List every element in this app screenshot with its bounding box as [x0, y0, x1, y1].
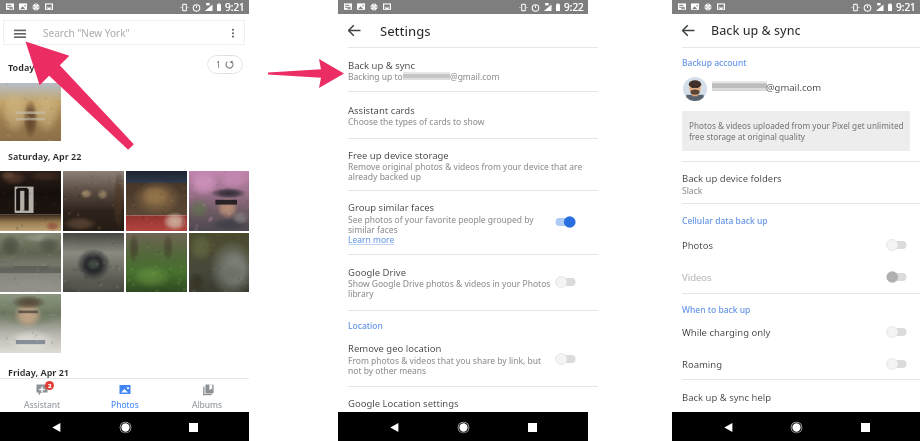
- button[interactable]: Roaming: [682, 358, 723, 371]
- button[interactable]: Free up device storage: [348, 149, 449, 162]
- staticText: Back up & sync: [348, 59, 416, 72]
- button[interactable]: Back: [381, 414, 407, 440]
- staticText: Remove original photos & videos from you…: [348, 161, 583, 183]
- button[interactable]: Photo: [0, 83, 61, 141]
- staticText: 2: [48, 382, 52, 390]
- staticText: Today: [8, 61, 35, 73]
- staticText: 9:22: [564, 0, 584, 14]
- button[interactable]: Photo: [0, 171, 61, 231]
- button[interactable]: Photos: [83, 379, 166, 413]
- staticText: @gmail.com: [766, 81, 822, 94]
- button[interactable]: Menu: [3, 20, 245, 45]
- button[interactable]: Recents: [852, 414, 878, 440]
- button[interactable]: Toggle: [885, 325, 908, 339]
- button[interactable]: Back up & sync help: [682, 391, 772, 404]
- staticText: Remove geo location: [348, 342, 442, 355]
- button[interactable]: Toggle: [554, 352, 577, 366]
- staticText: Friday, Apr 21: [8, 366, 69, 378]
- staticText: Saturday, Apr 22: [8, 150, 82, 162]
- staticText: Roaming: [682, 358, 723, 371]
- staticText: 9:21: [896, 0, 916, 14]
- button[interactable]: Back: [715, 414, 741, 440]
- button[interactable]: Google Location settings: [348, 397, 459, 410]
- button[interactable]: Albums: [166, 379, 249, 413]
- staticText: Albums: [192, 399, 223, 411]
- staticText: Backup account: [682, 57, 747, 69]
- button[interactable]: Videos: [682, 271, 712, 284]
- button[interactable]: Account avatar: [683, 77, 707, 101]
- button[interactable]: Assistant cards: [348, 104, 415, 117]
- staticText: Show Google Drive photos & videos in you…: [348, 278, 551, 300]
- staticText: 9:21: [225, 0, 245, 14]
- staticText: When to back up: [682, 304, 751, 316]
- staticText: Learn more: [348, 234, 395, 246]
- button[interactable]: Home: [112, 414, 138, 440]
- button[interactable]: Recents: [519, 414, 545, 440]
- button[interactable]: Back: [672, 14, 705, 47]
- button[interactable]: 1: [207, 55, 243, 74]
- staticText: Choose the types of cards to show: [348, 116, 485, 128]
- button[interactable]: Google Drive: [348, 266, 407, 279]
- button[interactable]: Remove geo location: [348, 342, 442, 355]
- staticText: Photos: [682, 239, 714, 252]
- button[interactable]: Toggle: [554, 215, 577, 229]
- staticText: Back up & sync: [711, 22, 801, 39]
- button[interactable]: 2: [0, 379, 83, 413]
- staticText: Photos: [111, 399, 139, 411]
- staticText: 1: [216, 59, 221, 70]
- button[interactable]: Photo: [63, 233, 124, 292]
- button[interactable]: Toggle: [885, 270, 908, 284]
- staticText: Search "New York": [43, 26, 130, 40]
- button[interactable]: Photos: [682, 239, 714, 252]
- staticText: Back up device folders: [682, 172, 782, 185]
- staticText: Slack: [682, 185, 703, 197]
- staticText: Videos: [682, 271, 712, 284]
- staticText: Assistant: [24, 399, 60, 411]
- staticText: Assistant cards: [348, 104, 415, 117]
- button[interactable]: Back: [43, 414, 69, 440]
- button[interactable]: Menu: [14, 27, 26, 39]
- button[interactable]: Toggle: [885, 357, 908, 371]
- button[interactable]: Group similar faces: [348, 201, 435, 214]
- staticText: While charging only: [682, 326, 771, 339]
- button[interactable]: Learn more: [348, 234, 395, 246]
- staticText: Location: [348, 320, 383, 332]
- button[interactable]: More options: [227, 27, 239, 39]
- staticText: See photos of your favorite people group…: [348, 214, 534, 236]
- staticText: Photos & videos uploaded from your Pixel…: [689, 120, 904, 142]
- staticText: Cellular data back up: [682, 215, 768, 227]
- button[interactable]: Back up & sync: [348, 59, 416, 72]
- staticText: Settings: [380, 22, 431, 40]
- staticText: Free up device storage: [348, 149, 449, 162]
- staticText: Backing up to: [348, 71, 405, 83]
- button[interactable]: Back up device folders: [682, 172, 782, 185]
- button[interactable]: Photo: [0, 233, 61, 292]
- button[interactable]: Photo: [63, 171, 124, 231]
- button[interactable]: Photo: [126, 171, 187, 231]
- staticText: Back up & sync help: [682, 391, 772, 404]
- staticText: @gmail.com: [450, 71, 500, 83]
- button[interactable]: Photo: [189, 171, 249, 231]
- button[interactable]: Toggle: [554, 275, 577, 289]
- staticText: Google Location settings: [348, 397, 459, 410]
- staticText: Google Drive: [348, 266, 407, 279]
- staticText: From photos & videos that you share by l…: [348, 355, 542, 377]
- button[interactable]: Home: [783, 414, 809, 440]
- button[interactable]: Back: [338, 14, 371, 47]
- staticText: Group similar faces: [348, 201, 435, 214]
- button[interactable]: Recents: [180, 414, 206, 440]
- button[interactable]: Photo: [189, 233, 249, 292]
- button[interactable]: Home: [450, 414, 476, 440]
- button[interactable]: Photo: [0, 294, 61, 353]
- button[interactable]: Photo: [126, 233, 187, 292]
- button[interactable]: Toggle: [885, 238, 908, 252]
- button[interactable]: While charging only: [682, 326, 771, 339]
